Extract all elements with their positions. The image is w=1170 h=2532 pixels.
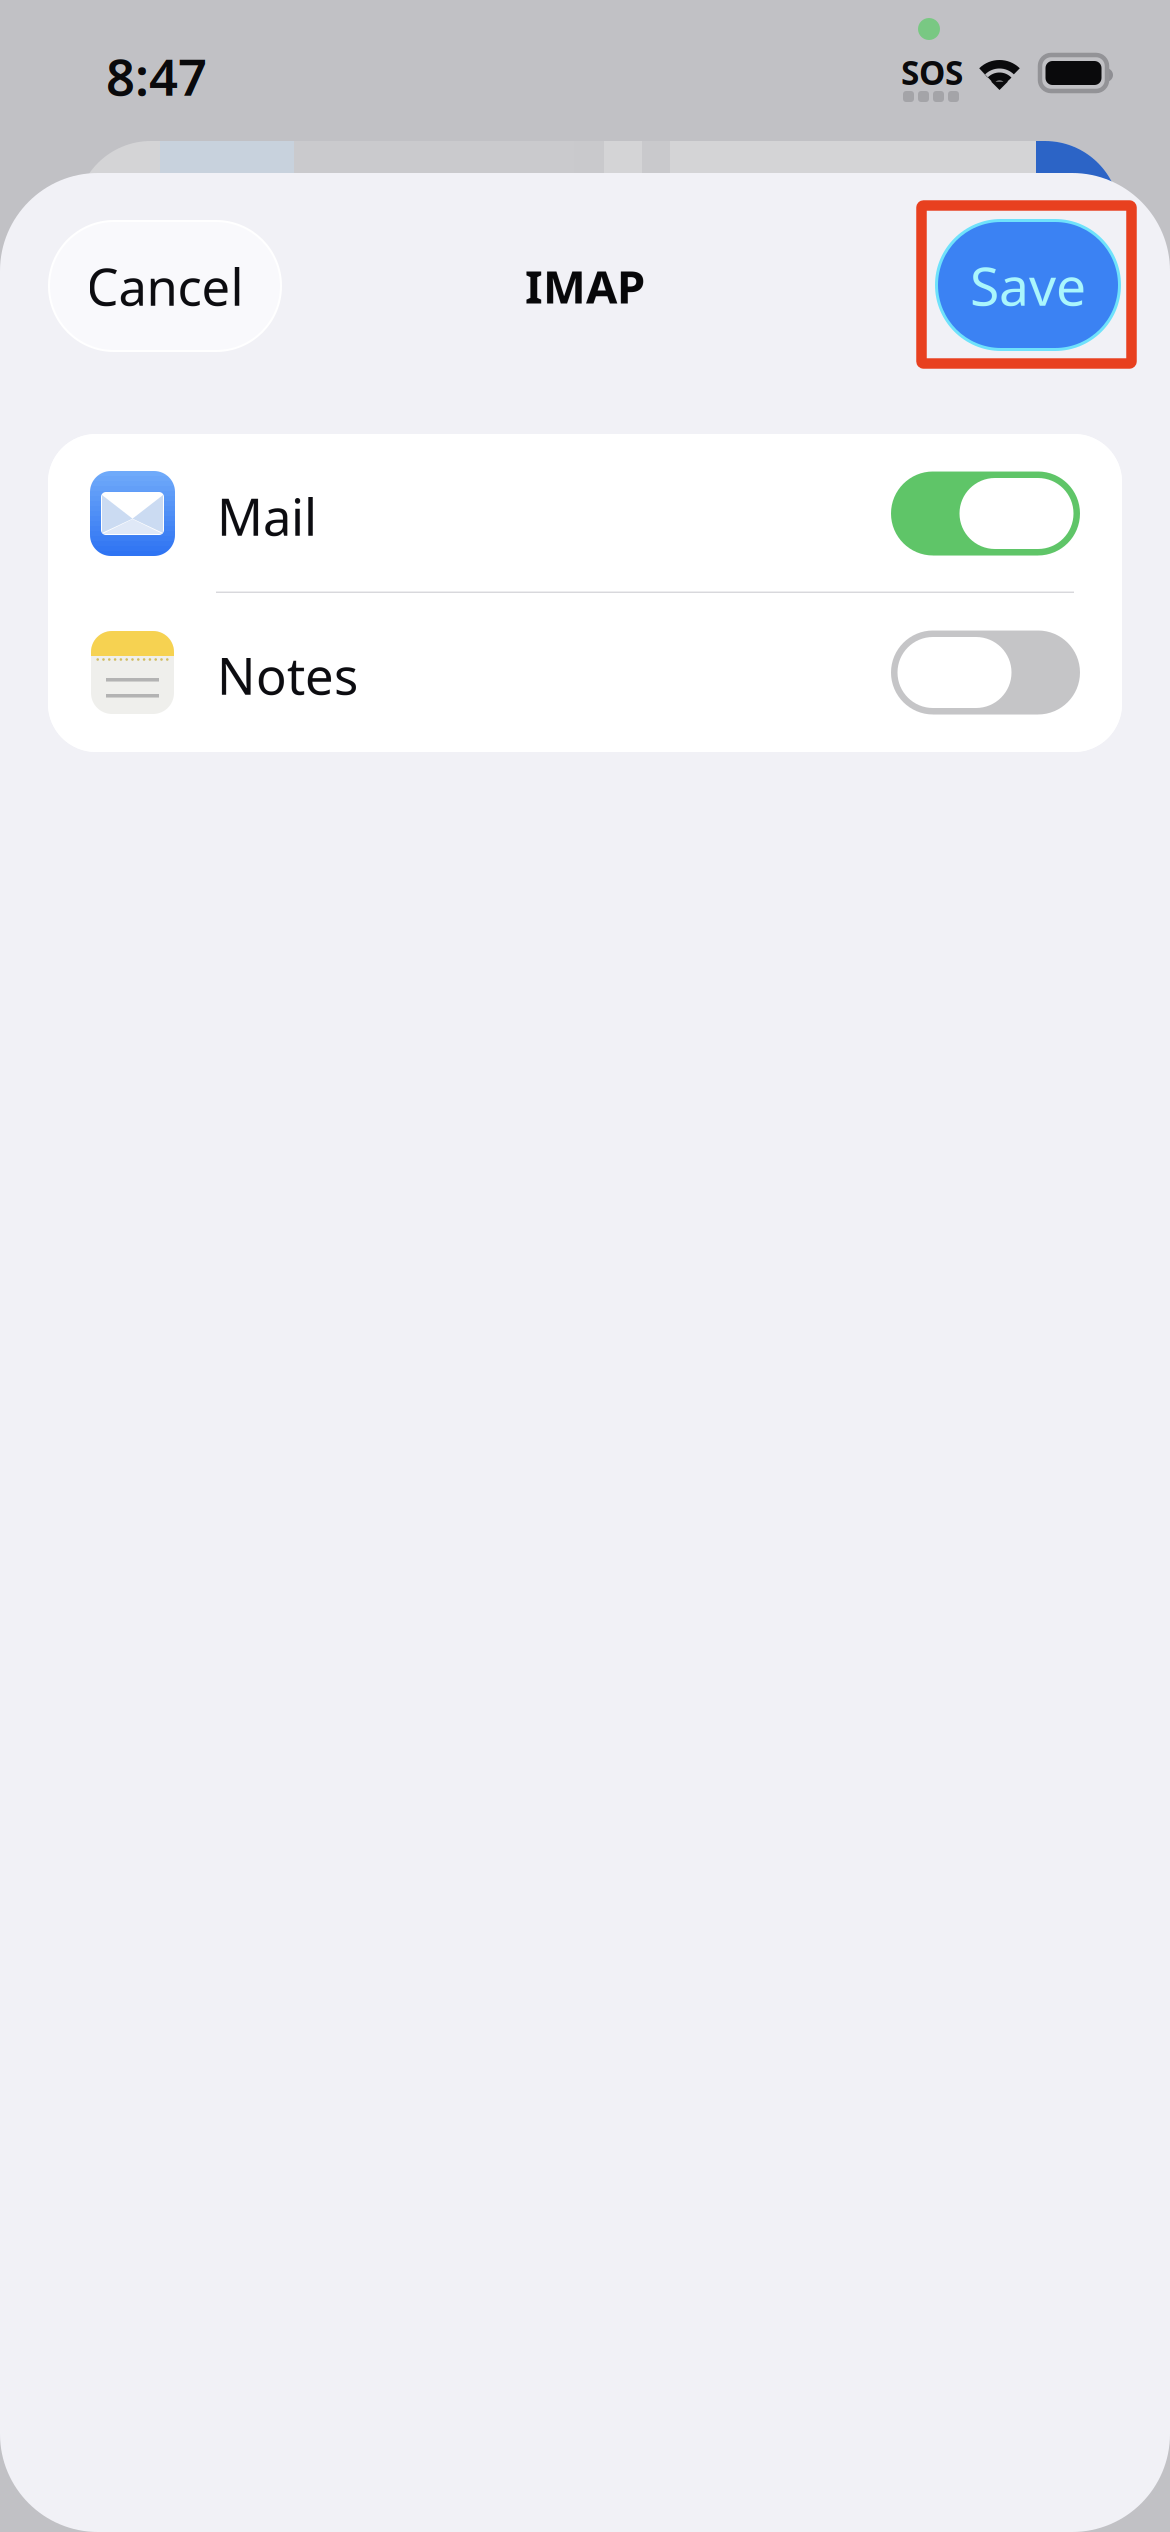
staticText: Mail [217, 482, 317, 544]
staticText: Notes [217, 641, 358, 703]
staticText: 8:47 [106, 42, 207, 110]
staticText: Cancel [86, 252, 243, 320]
staticText: IMAP [525, 256, 645, 316]
button[interactable]: Cancel [49, 221, 281, 351]
button[interactable]: Mail [48, 434, 1122, 593]
button[interactable]: Save [935, 219, 1121, 351]
button[interactable]: Notes [48, 593, 1122, 752]
staticText: SOS [901, 50, 963, 88]
staticText: Save [970, 250, 1086, 320]
